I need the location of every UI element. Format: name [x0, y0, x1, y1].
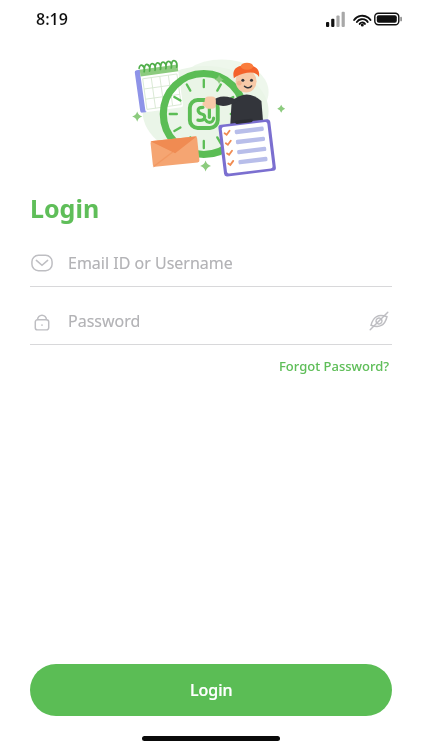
staticText: 8:19 [36, 8, 68, 30]
staticText: Password [68, 310, 366, 332]
button[interactable]: Forgot Password? [277, 353, 392, 379]
staticText: Forgot Password? [279, 357, 390, 375]
staticText: Login [190, 679, 233, 701]
staticText: Email ID or Username [68, 252, 392, 274]
button[interactable]: Show password [366, 308, 392, 334]
button[interactable]: Login [30, 664, 392, 716]
button[interactable]: Password [30, 301, 392, 341]
button[interactable]: Email ID or Username [30, 243, 392, 283]
staticText: Login [30, 191, 100, 225]
